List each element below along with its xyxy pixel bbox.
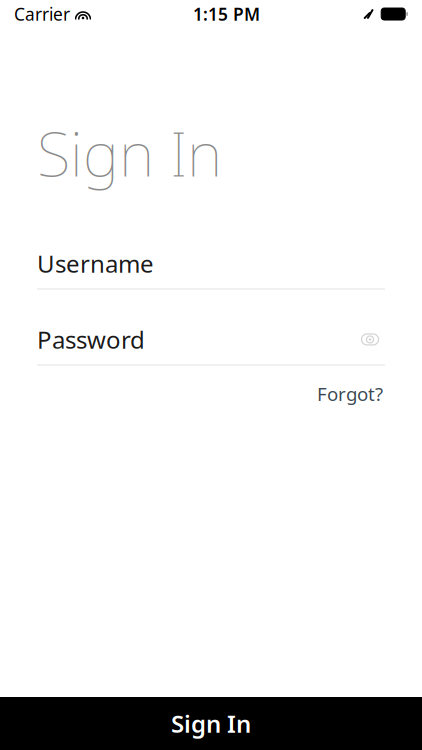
staticText: Password: [37, 323, 145, 355]
button[interactable]: Sign In: [0, 697, 422, 750]
button[interactable]: Forgot?: [315, 377, 385, 410]
staticText: Carrier: [14, 2, 70, 25]
button[interactable]: Show password: [355, 327, 385, 351]
staticText: Sign In: [37, 112, 222, 193]
staticText: Username: [37, 247, 154, 279]
staticText: Sign In: [171, 708, 251, 739]
staticText: 1:15 PM: [193, 2, 260, 25]
staticText: Forgot?: [317, 381, 383, 406]
